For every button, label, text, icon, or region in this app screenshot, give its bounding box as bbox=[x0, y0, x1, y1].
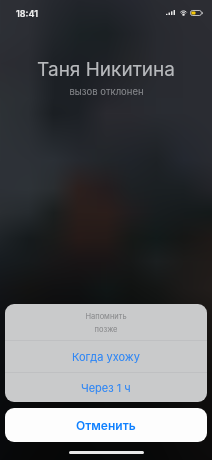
staticText: 18:41 bbox=[16, 8, 38, 19]
button[interactable]: Через 1 ч bbox=[5, 373, 207, 402]
button[interactable]: Отменить bbox=[5, 408, 207, 442]
staticText: Таня Никитина bbox=[37, 58, 175, 81]
staticText: Когда ухожу bbox=[72, 350, 140, 363]
button[interactable]: Когда ухожу bbox=[5, 341, 207, 372]
staticText: Отменить bbox=[76, 418, 136, 433]
staticText: Напомнить позже bbox=[85, 312, 127, 333]
staticText: вызов отклонен bbox=[69, 86, 144, 97]
staticText: Через 1 ч bbox=[81, 381, 131, 394]
